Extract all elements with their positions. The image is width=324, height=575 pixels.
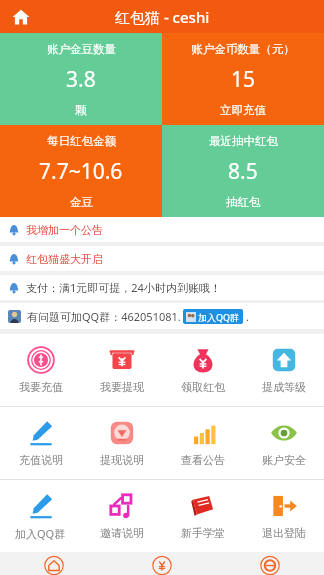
staticText: 账户安全 <box>262 453 306 467</box>
staticText: 退出登陆 <box>262 526 306 540</box>
button[interactable]: 新手学堂 <box>162 480 243 552</box>
button[interactable]: 加入QQ群 <box>0 480 81 552</box>
staticText: 领取红包 <box>181 380 225 394</box>
button[interactable]: 个人中心 <box>0 552 108 575</box>
button[interactable]: 邀请好友 <box>216 552 324 575</box>
staticText: . <box>246 309 249 324</box>
staticText: 支付：满1元即可提，24小时内到账哦！ <box>26 280 221 295</box>
staticText: 提现说明 <box>100 453 144 467</box>
button[interactable]: 红包猫盛大开启 <box>0 246 324 271</box>
button[interactable]: 支付：满1元即可提，24小时内到账哦！ <box>0 275 324 300</box>
staticText: 我增加一个公告 <box>26 223 103 237</box>
staticText: 提成等级 <box>262 380 306 394</box>
button[interactable]: 账户金币数量（元） <box>162 33 324 125</box>
staticText: 7.7~10.6 <box>39 157 123 186</box>
button[interactable]: 查看公告 <box>162 407 243 479</box>
staticText: 红包猫盛大开启 <box>26 252 103 266</box>
staticText: 有问题可加QQ群：462051081. <box>27 309 181 324</box>
staticText: 加入QQ群 <box>15 526 66 541</box>
staticText: 15 <box>231 65 256 94</box>
staticText: 8.5 <box>228 157 258 186</box>
staticText: 新手学堂 <box>181 526 225 540</box>
button[interactable]: 账户安全 <box>243 407 324 479</box>
button[interactable]: 我增加一个公告 <box>0 217 324 242</box>
staticText: 充值说明 <box>19 453 63 467</box>
staticText: 3.8 <box>66 65 96 94</box>
staticText: 查看公告 <box>181 453 225 467</box>
button[interactable]: 充值说明 <box>0 407 81 479</box>
button[interactable]: 加入QQ群 <box>183 309 243 324</box>
staticText: 金豆 <box>70 195 93 209</box>
button[interactable]: 我要充值 <box>0 334 81 406</box>
staticText: 账户金币数量（元） <box>191 42 295 56</box>
button[interactable]: 领取红包 <box>108 552 216 575</box>
button[interactable]: 最近抽中红包 <box>162 125 324 217</box>
button[interactable]: 领取红包 <box>162 334 243 406</box>
button[interactable]: 我要提现 <box>81 334 162 406</box>
staticText: 每日红包金额 <box>47 134 116 148</box>
staticText: 最近抽中红包 <box>209 134 278 148</box>
staticText: 立即充值 <box>220 103 266 117</box>
button[interactable]: 每日红包金额 <box>0 125 162 217</box>
staticText: 加入QQ群 <box>198 311 240 323</box>
staticText: 颗 <box>75 103 87 117</box>
staticText: 我要充值 <box>19 380 63 394</box>
button[interactable]: 退出登陆 <box>243 480 324 552</box>
button[interactable]: 提现说明 <box>81 407 162 479</box>
staticText: 邀请说明 <box>100 526 144 540</box>
staticText: 抽红包 <box>226 195 261 209</box>
button[interactable]: 邀请说明 <box>81 480 162 552</box>
button[interactable]: 提成等级 <box>243 334 324 406</box>
staticText: 账户金豆数量 <box>47 42 116 56</box>
button[interactable]: 账户金豆数量 <box>0 33 162 125</box>
staticText: 红包猫 - ceshi <box>115 7 210 27</box>
staticText: 我要提现 <box>100 380 144 394</box>
button[interactable]: Home <box>6 2 36 32</box>
